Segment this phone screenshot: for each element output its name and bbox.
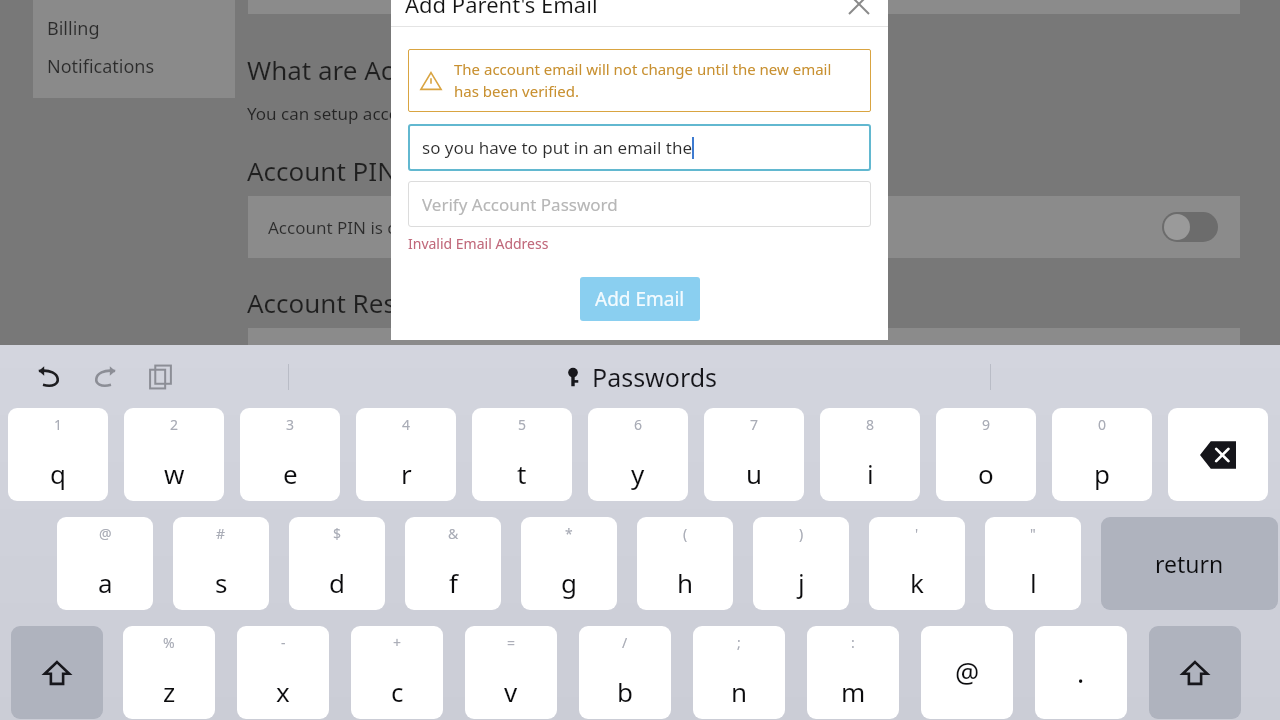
staticText: Add Email: [595, 286, 685, 312]
staticText: p: [1094, 456, 1110, 491]
staticText: Invalid Email Address: [408, 234, 549, 253]
staticText: Passwords: [592, 360, 718, 394]
staticText: +: [393, 633, 402, 652]
staticText: Verify Account Password: [422, 193, 618, 216]
button[interactable]: 0: [1052, 408, 1152, 501]
staticText: ): [799, 524, 804, 543]
button[interactable]: ": [985, 517, 1081, 610]
staticText: return: [1155, 548, 1224, 579]
staticText: 8: [866, 415, 875, 434]
button[interactable]: Backspace: [1168, 408, 1268, 501]
staticText: a: [98, 565, 113, 600]
button[interactable]: @: [57, 517, 153, 610]
staticText: 9: [982, 415, 991, 434]
button[interactable]: 3: [240, 408, 340, 501]
staticText: g: [561, 565, 577, 600]
staticText: =: [507, 633, 516, 652]
button[interactable]: Shift: [1149, 626, 1241, 719]
staticText: 3: [286, 415, 295, 434]
staticText: %: [163, 633, 175, 652]
staticText: Billing: [47, 16, 100, 41]
button[interactable]: :: [807, 626, 899, 719]
staticText: v: [504, 674, 518, 709]
staticText: m: [841, 674, 866, 709]
staticText: w: [164, 456, 185, 491]
staticText: 2: [170, 415, 179, 434]
staticText: 5: [518, 415, 527, 434]
staticText: Notifications: [47, 54, 155, 79]
staticText: @: [99, 524, 112, 543]
button[interactable]: Paste: [140, 356, 182, 398]
button[interactable]: 9: [936, 408, 1036, 501]
staticText: s: [215, 565, 228, 600]
button[interactable]: 2: [124, 408, 224, 501]
button[interactable]: =: [465, 626, 557, 719]
button[interactable]: -: [237, 626, 329, 719]
staticText: 6: [634, 415, 643, 434]
staticText: c: [391, 674, 404, 709]
staticText: /: [622, 633, 628, 652]
staticText: @: [955, 654, 980, 691]
button[interactable]: return: [1101, 517, 1278, 610]
button[interactable]: Verify Account Password: [408, 181, 871, 227]
staticText: .: [1077, 654, 1085, 691]
button[interactable]: Close: [844, 0, 874, 19]
staticText: so you have to put in an email the: [422, 136, 692, 159]
staticText: Account PIN: [247, 153, 397, 188]
staticText: u: [746, 456, 763, 491]
button[interactable]: Shift: [11, 626, 103, 719]
button[interactable]: 8: [820, 408, 920, 501]
button[interactable]: .: [1035, 626, 1127, 719]
staticText: 4: [402, 415, 411, 434]
button[interactable]: $: [289, 517, 385, 610]
button[interactable]: ': [869, 517, 965, 610]
button[interactable]: 7: [704, 408, 804, 501]
staticText: j: [798, 565, 805, 600]
button[interactable]: +: [351, 626, 443, 719]
staticText: r: [401, 456, 412, 491]
staticText: $: [333, 524, 342, 543]
button[interactable]: 6: [588, 408, 688, 501]
button[interactable]: [1162, 212, 1218, 242]
staticText: l: [1030, 565, 1037, 600]
staticText: *: [565, 524, 573, 543]
button[interactable]: Redo: [84, 356, 126, 398]
staticText: (: [683, 524, 688, 543]
button[interactable]: *: [521, 517, 617, 610]
staticText: b: [617, 674, 633, 709]
staticText: ;: [737, 633, 741, 652]
staticText: You can setup account restrictions, sett…: [247, 102, 780, 125]
staticText: d: [329, 565, 345, 600]
staticText: ': [915, 524, 919, 543]
staticText: &: [448, 524, 459, 543]
staticText: 7: [750, 415, 759, 434]
button[interactable]: /: [579, 626, 671, 719]
staticText: t: [517, 456, 527, 491]
staticText: f: [449, 565, 458, 600]
staticText: o: [978, 456, 994, 491]
staticText: 1: [54, 415, 63, 434]
staticText: -: [281, 633, 286, 652]
staticText: z: [163, 674, 176, 709]
button[interactable]: ;: [693, 626, 785, 719]
button[interactable]: Undo: [28, 356, 70, 398]
button[interactable]: so you have to put in an email the: [408, 124, 871, 171]
button[interactable]: &: [405, 517, 501, 610]
button[interactable]: %: [123, 626, 215, 719]
staticText: x: [276, 674, 290, 709]
staticText: The account email will not change until …: [454, 59, 859, 102]
button[interactable]: 4: [356, 408, 456, 501]
button[interactable]: Add Email: [580, 277, 700, 321]
button[interactable]: ): [753, 517, 849, 610]
button[interactable]: #: [173, 517, 269, 610]
button[interactable]: 5: [472, 408, 572, 501]
button[interactable]: 1: [8, 408, 108, 501]
staticText: k: [910, 565, 924, 600]
button[interactable]: @: [921, 626, 1013, 719]
staticText: n: [731, 674, 748, 709]
button[interactable]: (: [637, 517, 733, 610]
staticText: y: [631, 456, 645, 491]
staticText: i: [867, 456, 874, 491]
staticText: ": [1030, 524, 1036, 543]
staticText: q: [50, 456, 66, 491]
